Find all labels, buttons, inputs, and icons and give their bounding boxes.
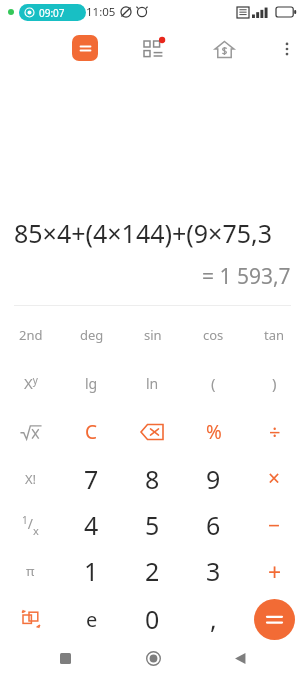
button[interactable]: 8 <box>122 455 183 502</box>
button[interactable]: 2 <box>122 548 183 594</box>
button[interactable]: History <box>139 34 169 64</box>
staticText: 11:05 <box>86 4 116 20</box>
button[interactable]: C <box>61 408 122 455</box>
button[interactable]: π <box>0 548 61 594</box>
button[interactable]: 7 <box>61 455 122 502</box>
button[interactable]: Calculator <box>72 35 98 61</box>
staticText: C <box>85 419 98 445</box>
staticText: lg <box>85 374 98 393</box>
staticText: 9 <box>206 462 221 496</box>
button[interactable]: lg <box>61 358 122 408</box>
staticText: 8 <box>145 462 160 496</box>
staticText: Xy <box>24 373 38 393</box>
button[interactable]: 0 <box>122 594 183 644</box>
staticText: = 1 593,7 <box>202 262 291 291</box>
staticText: sin <box>144 326 162 344</box>
staticText: 0 <box>145 602 160 636</box>
button[interactable]: Delete <box>122 408 183 455</box>
button[interactable]: X! <box>0 455 61 502</box>
button[interactable]: 5 <box>122 502 183 548</box>
staticText: ÷ <box>269 418 281 445</box>
staticText: 85×4+(4×144)+(9×75,3 <box>14 216 273 250</box>
button[interactable]: cos <box>183 312 244 358</box>
button[interactable]: ln <box>122 358 183 408</box>
staticText: tan <box>264 326 285 344</box>
button[interactable]: Loan calculator <box>209 34 239 64</box>
button[interactable]: 9 <box>183 455 244 502</box>
button[interactable]: Convert <box>0 594 61 644</box>
button[interactable]: Recents <box>43 636 87 680</box>
staticText: 7 <box>84 462 99 496</box>
staticText: ) <box>272 373 277 393</box>
button[interactable]: sin <box>122 312 183 358</box>
staticText: 5 <box>145 508 160 542</box>
button[interactable]: + <box>244 548 305 594</box>
button[interactable]: deg <box>61 312 122 358</box>
button[interactable]: 6 <box>183 502 244 548</box>
button[interactable]: Xy <box>0 358 61 408</box>
button[interactable]: ( <box>183 358 244 408</box>
button[interactable]: tan <box>244 312 305 358</box>
button[interactable] <box>0 408 61 455</box>
staticText: X! <box>25 470 37 488</box>
button[interactable]: − <box>244 502 305 548</box>
button[interactable]: 1/x <box>0 502 61 548</box>
button[interactable]: 4 <box>61 502 122 548</box>
button[interactable]: × <box>244 455 305 502</box>
staticText: 2nd <box>19 326 43 344</box>
staticText: + <box>268 556 282 587</box>
staticText: cos <box>203 326 224 344</box>
button[interactable]: ) <box>244 358 305 408</box>
button[interactable]: Home <box>131 636 175 680</box>
staticText: e <box>86 606 98 633</box>
staticText: ln <box>146 374 159 393</box>
button[interactable] <box>244 594 305 644</box>
staticText: % <box>206 419 222 445</box>
staticText: 2 <box>145 554 160 588</box>
staticText: 3 <box>206 554 221 588</box>
staticText: 1/x <box>22 513 39 538</box>
staticText: , <box>210 602 217 636</box>
button[interactable]: 2nd <box>0 312 61 358</box>
staticText: deg <box>80 326 104 344</box>
staticText: 1 <box>84 554 99 588</box>
button[interactable]: 1 <box>61 548 122 594</box>
staticText: − <box>268 511 281 540</box>
staticText: π <box>26 562 35 580</box>
staticText: ( <box>211 373 216 393</box>
button[interactable]: ÷ <box>244 408 305 455</box>
button[interactable]: , <box>183 594 244 644</box>
button[interactable]: More options <box>272 34 302 64</box>
staticText: 6 <box>206 508 221 542</box>
staticText: × <box>268 464 281 493</box>
button[interactable]: e <box>61 594 122 644</box>
staticText: 4 <box>84 508 99 542</box>
button[interactable]: % <box>183 408 244 455</box>
button[interactable]: 3 <box>183 548 244 594</box>
button[interactable]: Back <box>218 636 262 680</box>
staticText: 09:07 <box>39 6 65 20</box>
